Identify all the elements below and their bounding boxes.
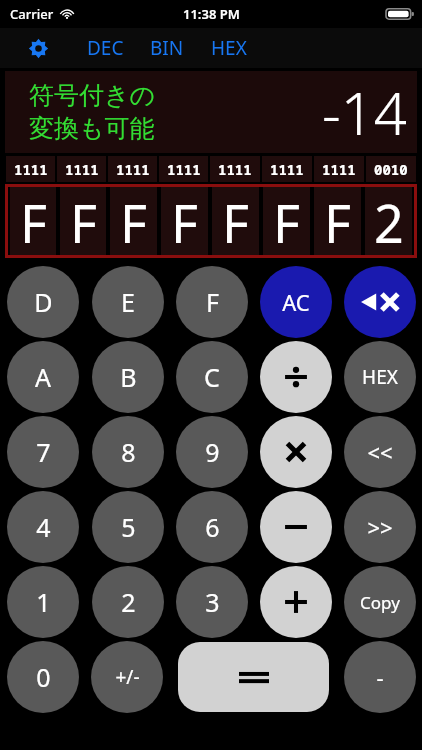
staticText: 2 [374,187,404,255]
button[interactable]: 3 [176,566,248,638]
staticText: DEC [87,35,124,61]
button[interactable]: 6 [176,491,248,563]
button[interactable]: Settings [22,32,54,64]
button[interactable]: 1111 [57,156,106,182]
button[interactable]: 9 [176,416,248,488]
staticText: F [120,187,147,255]
button[interactable]: 7 [7,416,79,488]
staticText: Copy [360,591,400,614]
staticText: F [70,187,97,255]
staticText: 0 [36,660,51,694]
staticText: 6 [205,510,220,544]
staticText: A [35,360,51,394]
staticText: 0010 [374,160,408,179]
staticText: +/- [115,664,140,690]
button[interactable]: BIN [136,28,198,68]
staticText: 1111 [218,160,252,179]
button[interactable]: F [110,187,157,255]
button[interactable]: − [260,491,332,563]
staticText: E [121,285,135,319]
staticText: 1 [36,585,51,619]
staticText: 変換も可能 [29,113,155,144]
staticText: - [376,662,384,692]
button[interactable]: × [260,416,332,488]
button[interactable]: B [92,341,164,413]
staticText: 4 [36,510,51,544]
button[interactable]: >> [344,491,416,563]
button[interactable]: 2 [365,187,412,255]
staticText: HEX [211,35,247,61]
button[interactable]: F [161,187,208,255]
staticText: 7 [36,435,51,469]
staticText: 9 [205,435,220,469]
button[interactable]: 1 [7,566,79,638]
staticText: 8 [121,435,136,469]
staticText: BIN [150,35,184,61]
button[interactable]: 0 [7,641,79,713]
staticText: 5 [121,510,136,544]
button[interactable]: A [7,341,79,413]
button[interactable]: 2 [92,566,164,638]
button[interactable]: << [344,416,416,488]
staticText: << [367,437,393,467]
staticText: 11:38 PM [183,5,240,23]
button[interactable]: 1111 [210,156,260,182]
button[interactable] [178,642,329,712]
button[interactable]: E [92,266,164,338]
button[interactable]: F [10,187,56,255]
staticText: F [20,187,47,255]
staticText: F [171,187,198,255]
button[interactable]: 1111 [314,156,364,182]
button[interactable]: 1111 [159,156,208,182]
staticText: 1111 [65,160,99,179]
button[interactable]: AC [260,266,332,338]
staticText: 3 [205,585,220,619]
button[interactable]: 1111 [262,156,312,182]
button[interactable]: F [263,187,310,255]
button[interactable]: 5 [92,491,164,563]
button[interactable]: F [212,187,259,255]
button[interactable]: DEC [74,28,136,68]
button[interactable]: 1111 [6,156,55,182]
staticText: C [204,360,220,394]
button[interactable]: 1111 [108,156,157,182]
staticText: F [273,187,300,255]
staticText: D [34,285,53,319]
staticText: B [120,360,137,394]
staticText: 1111 [167,160,201,179]
staticText: 1111 [116,160,150,179]
button[interactable]: + [260,566,332,638]
button[interactable]: HEX [198,28,260,68]
staticText: 2 [121,585,136,619]
button[interactable]: F [60,187,106,255]
button[interactable]: C [176,341,248,413]
button[interactable]: F [176,266,248,338]
staticText: F [324,187,351,255]
button[interactable]: D [7,266,79,338]
staticText: -14 [322,73,407,152]
button[interactable]: HEX [344,341,416,413]
staticText: HEX [362,364,398,390]
button[interactable]: F [314,187,361,255]
button[interactable]: Copy [344,566,416,638]
button[interactable]: 4 [7,491,79,563]
button[interactable]: 8 [92,416,164,488]
staticText: 1111 [322,160,356,179]
staticText: 1111 [270,160,304,179]
staticText: Carrier [10,5,54,23]
button[interactable]: ÷ [260,341,332,413]
staticText: F [222,187,249,255]
staticText: 符号付きの [29,80,156,111]
button[interactable]: +/- [91,641,163,713]
staticText: F [206,285,219,319]
staticText: >> [367,512,393,542]
button[interactable]: - [344,641,416,713]
staticText: 1111 [14,160,48,179]
staticText: AC [282,287,310,317]
button[interactable]: Delete [344,266,416,338]
button[interactable]: 0010 [366,156,416,182]
